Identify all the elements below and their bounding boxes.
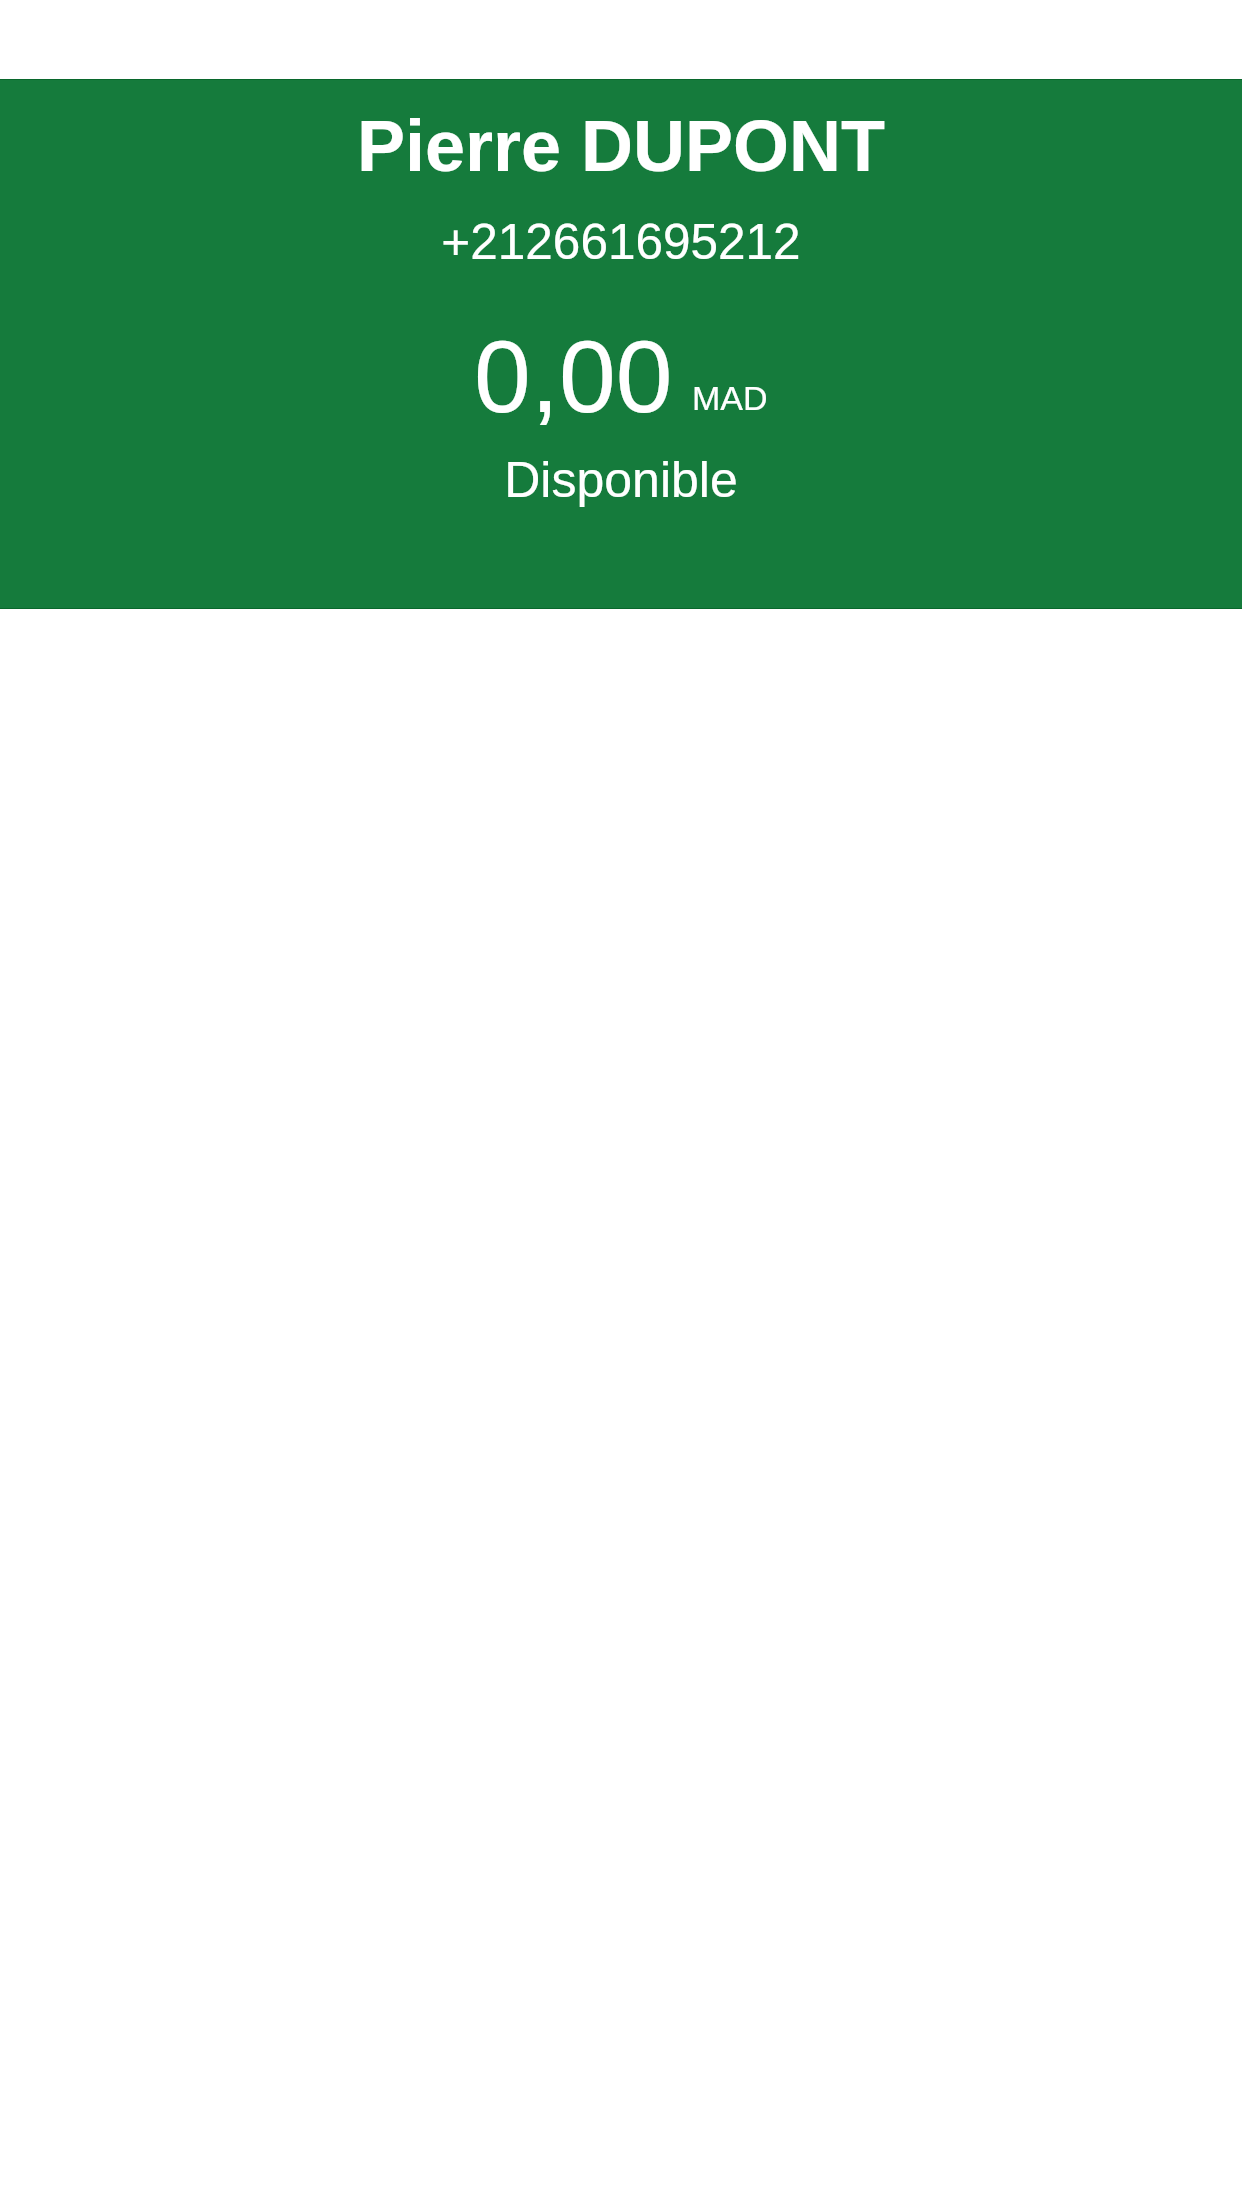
staticText: Disponible — [0, 452, 1242, 508]
staticText: MAD — [692, 379, 768, 417]
button[interactable]: Account balance card — [0, 79, 1242, 609]
staticText: 0,00 — [474, 320, 673, 434]
staticText: Pierre DUPONT — [0, 106, 1242, 186]
staticText: +212661695212 — [0, 214, 1242, 269]
